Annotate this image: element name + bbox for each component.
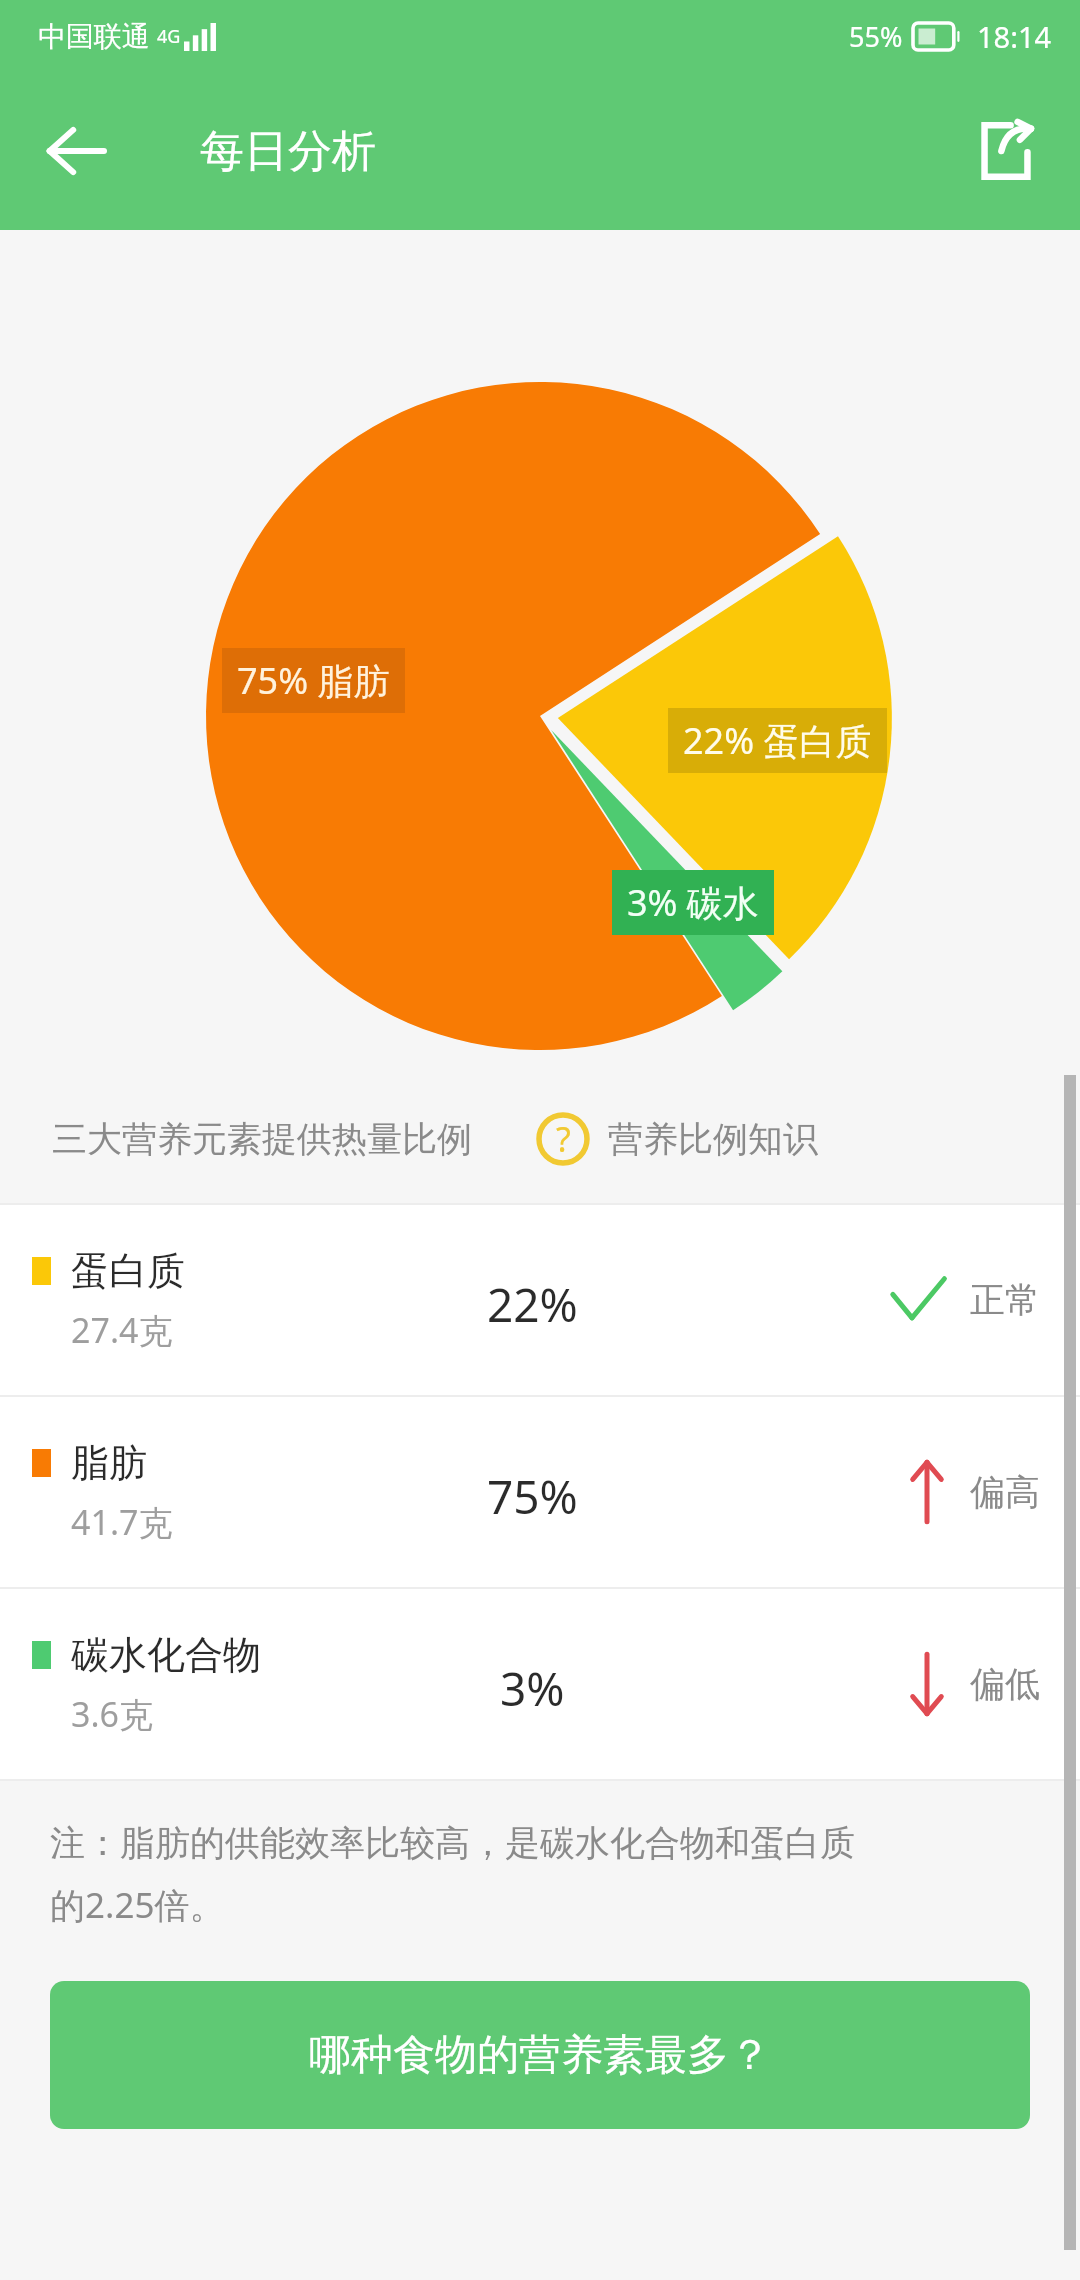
staticText: 注：脂肪的供能效率比较高，是碳水化合物和蛋白质 bbox=[50, 1821, 855, 1865]
staticText: 偏低 bbox=[970, 1662, 1040, 1706]
button[interactable]: Share bbox=[958, 103, 1054, 199]
button[interactable]: ? bbox=[530, 1106, 824, 1172]
staticText: 每日分析 bbox=[200, 124, 376, 179]
staticText: 18:14 bbox=[977, 17, 1052, 56]
button[interactable]: 蛋白质 bbox=[0, 1205, 1080, 1395]
staticText: 55% bbox=[849, 18, 903, 55]
staticText: ? bbox=[556, 1116, 571, 1162]
staticText: 的2.25倍。 bbox=[50, 1881, 225, 1929]
staticText: 哪种食物的营养素最多？ bbox=[309, 2029, 771, 2082]
staticText: 营养比例知识 bbox=[608, 1117, 818, 1161]
staticText: 脂肪 bbox=[71, 1439, 147, 1487]
button[interactable]: 脂肪 bbox=[0, 1397, 1080, 1587]
staticText: 41.7克 bbox=[71, 1499, 173, 1545]
staticText: 22% 蛋白质 bbox=[683, 716, 872, 765]
staticText: 蛋白质 bbox=[71, 1247, 185, 1295]
staticText: 三大营养元素提供热量比例 bbox=[52, 1117, 472, 1161]
staticText: 75% 脂肪 bbox=[237, 656, 390, 705]
staticText: 偏高 bbox=[970, 1470, 1040, 1514]
staticText: 3.6克 bbox=[71, 1691, 154, 1737]
button[interactable]: Back bbox=[28, 103, 124, 199]
staticText: 3% bbox=[500, 1657, 565, 1720]
staticText: 3% 碳水 bbox=[627, 878, 759, 927]
staticText: 27.4克 bbox=[71, 1307, 173, 1353]
button[interactable]: 哪种食物的营养素最多？ bbox=[50, 1981, 1030, 2129]
staticText: 75% bbox=[487, 1465, 578, 1528]
staticText: 碳水化合物 bbox=[71, 1631, 261, 1679]
staticText: 4G bbox=[157, 24, 181, 49]
staticText: 中国联通 bbox=[38, 19, 150, 54]
staticText: 22% bbox=[487, 1273, 578, 1336]
button[interactable]: 碳水化合物 bbox=[0, 1589, 1080, 1779]
staticText: 正常 bbox=[970, 1278, 1040, 1322]
